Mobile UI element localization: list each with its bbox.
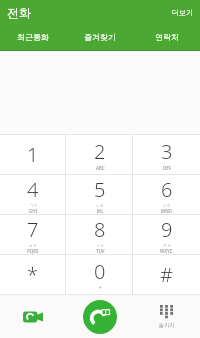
button[interactable]: 8: [66, 215, 133, 254]
staticText: 2: [94, 138, 106, 165]
staticText: 1: [27, 141, 39, 168]
staticText: 4: [27, 176, 39, 203]
staticText: WXYZ: [160, 248, 173, 254]
staticText: MNO: [161, 208, 173, 214]
staticText: TUV: [96, 248, 105, 254]
staticText: ㄷㅌ: [163, 203, 171, 208]
button[interactable]: 6: [133, 175, 200, 214]
button[interactable]: 5: [66, 175, 133, 214]
staticText: 9: [161, 216, 173, 243]
staticText: 3: [161, 138, 173, 165]
staticText: ㄴㄹ: [96, 203, 104, 208]
staticText: ㅅㅎ: [96, 243, 104, 248]
staticText: 6: [161, 176, 173, 203]
staticText: 전화: [7, 5, 31, 20]
button[interactable]: *: [0, 255, 66, 294]
staticText: DEF: [163, 165, 172, 171]
button[interactable]: 즐겨찾기: [66, 24, 133, 50]
staticText: 8: [94, 216, 106, 243]
staticText: 숨기기: [159, 322, 174, 328]
staticText: +: [99, 285, 102, 291]
button[interactable]: Call: [83, 300, 117, 334]
button[interactable]: 7: [0, 215, 66, 254]
staticText: 연락처: [155, 32, 179, 42]
staticText: 즐겨찾기: [84, 32, 116, 42]
staticText: 0: [94, 258, 106, 285]
staticText: ABC: [96, 165, 105, 171]
button[interactable]: 최근통화: [0, 24, 66, 50]
button[interactable]: 4: [0, 175, 66, 214]
button[interactable]: 1: [0, 135, 66, 174]
button[interactable]: 숨기기: [133, 295, 200, 338]
button[interactable]: #: [133, 255, 200, 294]
staticText: ㄱㅋ: [29, 203, 37, 208]
staticText: #: [160, 261, 173, 288]
button[interactable]: 9: [133, 215, 200, 254]
staticText: 5: [94, 176, 106, 203]
button[interactable]: 2: [66, 135, 133, 174]
staticText: ㅈㅊ: [163, 243, 171, 248]
staticText: JKL: [97, 208, 104, 214]
staticText: *: [27, 261, 39, 288]
button[interactable]: 연락처: [133, 24, 200, 50]
button[interactable]: 3: [133, 135, 200, 174]
staticText: 7: [27, 216, 39, 243]
button[interactable]: 0: [66, 255, 133, 294]
staticText: GHI: [29, 208, 38, 214]
staticText: 더보기: [172, 8, 193, 17]
button[interactable]: 더보기: [165, 5, 200, 20]
staticText: ㅂㅍ: [29, 243, 37, 248]
staticText: 최근통화: [17, 32, 49, 42]
staticText: PQRS: [27, 248, 39, 254]
button[interactable]: Video call: [0, 295, 66, 338]
